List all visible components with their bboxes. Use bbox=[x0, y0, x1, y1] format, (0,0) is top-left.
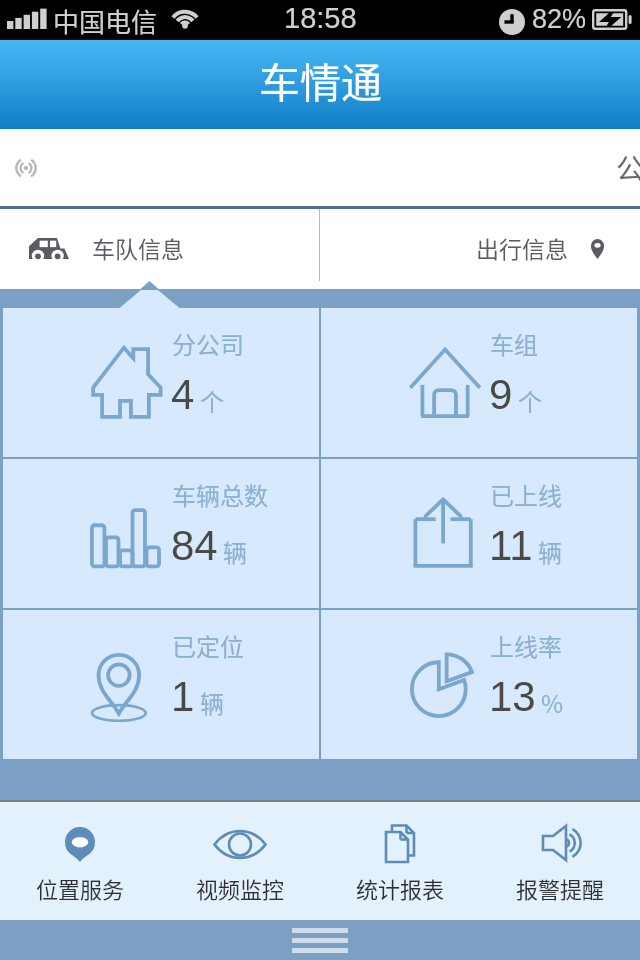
button[interactable]: 车队信息 bbox=[0, 209, 319, 281]
button[interactable]: Signal bbox=[0, 129, 640, 206]
button[interactable]: 报警提醒 bbox=[480, 802, 640, 920]
staticText: 车组 bbox=[490, 326, 538, 361]
button[interactable]: 出行信息 bbox=[320, 209, 640, 281]
button[interactable]: 分公司 bbox=[3, 308, 319, 457]
staticText: 辆 bbox=[538, 534, 562, 569]
staticText: 个 bbox=[518, 383, 542, 418]
staticText: 车队信息 bbox=[92, 231, 184, 264]
staticText: 上线率 bbox=[490, 628, 562, 663]
staticText: 车辆总数 bbox=[172, 477, 268, 512]
staticText: 82 bbox=[532, 4, 563, 34]
staticText: 13 bbox=[489, 673, 536, 720]
staticText: 统计报表 bbox=[356, 872, 445, 904]
staticText: 公司 bbox=[616, 147, 640, 188]
button[interactable]: 车辆总数 bbox=[3, 459, 319, 608]
staticText: 报警提醒 bbox=[516, 872, 605, 904]
staticText: 位置服务 bbox=[36, 872, 125, 904]
other: Signal bbox=[10, 152, 42, 184]
button[interactable]: Menu bbox=[0, 920, 640, 960]
staticText: 已定位 bbox=[172, 628, 244, 663]
staticText: 11 bbox=[489, 522, 533, 569]
button[interactable]: 视频监控 bbox=[160, 802, 320, 920]
staticText: 9 bbox=[489, 371, 513, 418]
button[interactable]: 位置服务 bbox=[0, 802, 160, 920]
staticText: 18:58 bbox=[284, 2, 357, 34]
staticText: 1 bbox=[171, 673, 195, 720]
staticText: 84 bbox=[171, 522, 218, 569]
staticText: 辆 bbox=[200, 685, 224, 720]
button[interactable]: 统计报表 bbox=[320, 802, 480, 920]
staticText: 辆 bbox=[223, 534, 247, 569]
staticText: 分公司 bbox=[172, 326, 244, 361]
button[interactable]: 车组 bbox=[321, 308, 637, 457]
button[interactable]: 上线率 bbox=[321, 610, 637, 759]
staticText: % bbox=[562, 4, 587, 34]
staticText: 个 bbox=[200, 383, 224, 418]
staticText: 中国电信 bbox=[53, 2, 158, 40]
staticText: 出行信息 bbox=[476, 231, 568, 264]
staticText: 车情通 bbox=[259, 50, 382, 109]
staticText: 已上线 bbox=[490, 477, 562, 512]
button[interactable]: 已上线 bbox=[321, 459, 637, 608]
button[interactable]: 已定位 bbox=[3, 610, 319, 759]
staticText: 视频监控 bbox=[196, 872, 285, 904]
staticText: 4 bbox=[171, 371, 195, 418]
staticText: % bbox=[541, 685, 564, 720]
